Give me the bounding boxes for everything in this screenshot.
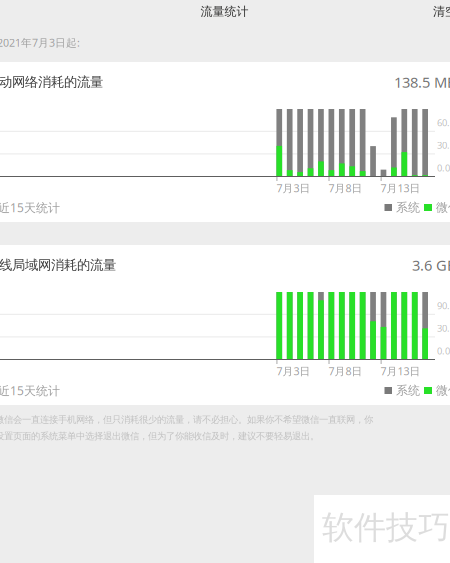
staticText: 清空 bbox=[433, 4, 450, 19]
staticText: 0.0 M bbox=[437, 345, 450, 357]
staticText: 30.0 M bbox=[437, 322, 450, 334]
staticText: 90.0 M bbox=[437, 299, 450, 312]
staticText: 30.0 M bbox=[437, 139, 450, 151]
staticText: 微信 bbox=[436, 200, 450, 215]
staticText: 移动网络消耗的流量 bbox=[0, 74, 103, 90]
staticText: 138.5 MB bbox=[394, 72, 450, 92]
staticText: 7月13日 bbox=[381, 181, 421, 195]
staticText: 0.0 M bbox=[437, 162, 450, 174]
staticText: 最近15天统计 bbox=[0, 382, 60, 398]
staticText: 自2021年7月3日起: bbox=[0, 35, 80, 50]
staticText: 最近15天统计 bbox=[0, 199, 60, 215]
staticText: 系统 bbox=[396, 383, 420, 398]
staticText: 7月13日 bbox=[381, 364, 421, 378]
staticText: 3.6 GB bbox=[412, 255, 450, 275]
staticText: 60.0 M bbox=[437, 116, 450, 129]
staticText: 7月8日 bbox=[328, 181, 362, 195]
staticText: 无线局域网消耗的流量 bbox=[0, 257, 116, 273]
staticText: 系统 bbox=[396, 200, 420, 215]
staticText: 7月8日 bbox=[328, 364, 362, 378]
staticText: 从设置页面的系统菜单中选择退出微信，但为了你能收信及时，建议不要轻易退出。 bbox=[0, 430, 319, 442]
staticText: 7月3日 bbox=[276, 181, 310, 195]
staticText: 流量统计 bbox=[200, 4, 248, 19]
staticText: 7月3日 bbox=[276, 364, 310, 378]
button[interactable]: 清空 bbox=[429, 0, 450, 24]
staticText: 微信 bbox=[436, 383, 450, 398]
staticText: 软件技巧 bbox=[322, 508, 450, 547]
staticText: 用微信会一直连接手机网络，但只消耗很少的流量，请不必担心。如果你不希望微信一直联… bbox=[0, 414, 373, 425]
